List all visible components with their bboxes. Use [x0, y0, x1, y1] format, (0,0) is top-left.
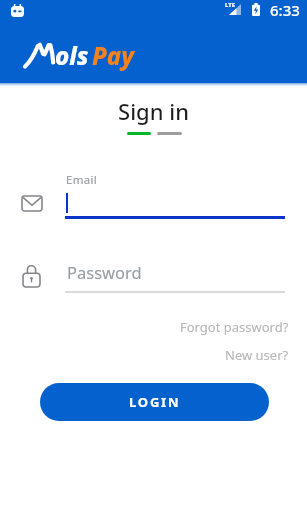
staticText: Pay: [92, 39, 134, 72]
button[interactable]: LOGIN: [40, 383, 269, 421]
staticText: Sign in: [0, 96, 307, 126]
staticText: Password: [67, 261, 142, 283]
button[interactable]: Forgot password?: [180, 318, 289, 336]
staticText: ols: [55, 39, 89, 72]
staticText: Email: [66, 172, 98, 188]
staticText: LOGIN: [129, 393, 181, 411]
staticText: 6:33: [270, 0, 300, 20]
button[interactable]: New user?: [225, 346, 289, 364]
staticText: LTE: [225, 1, 236, 9]
